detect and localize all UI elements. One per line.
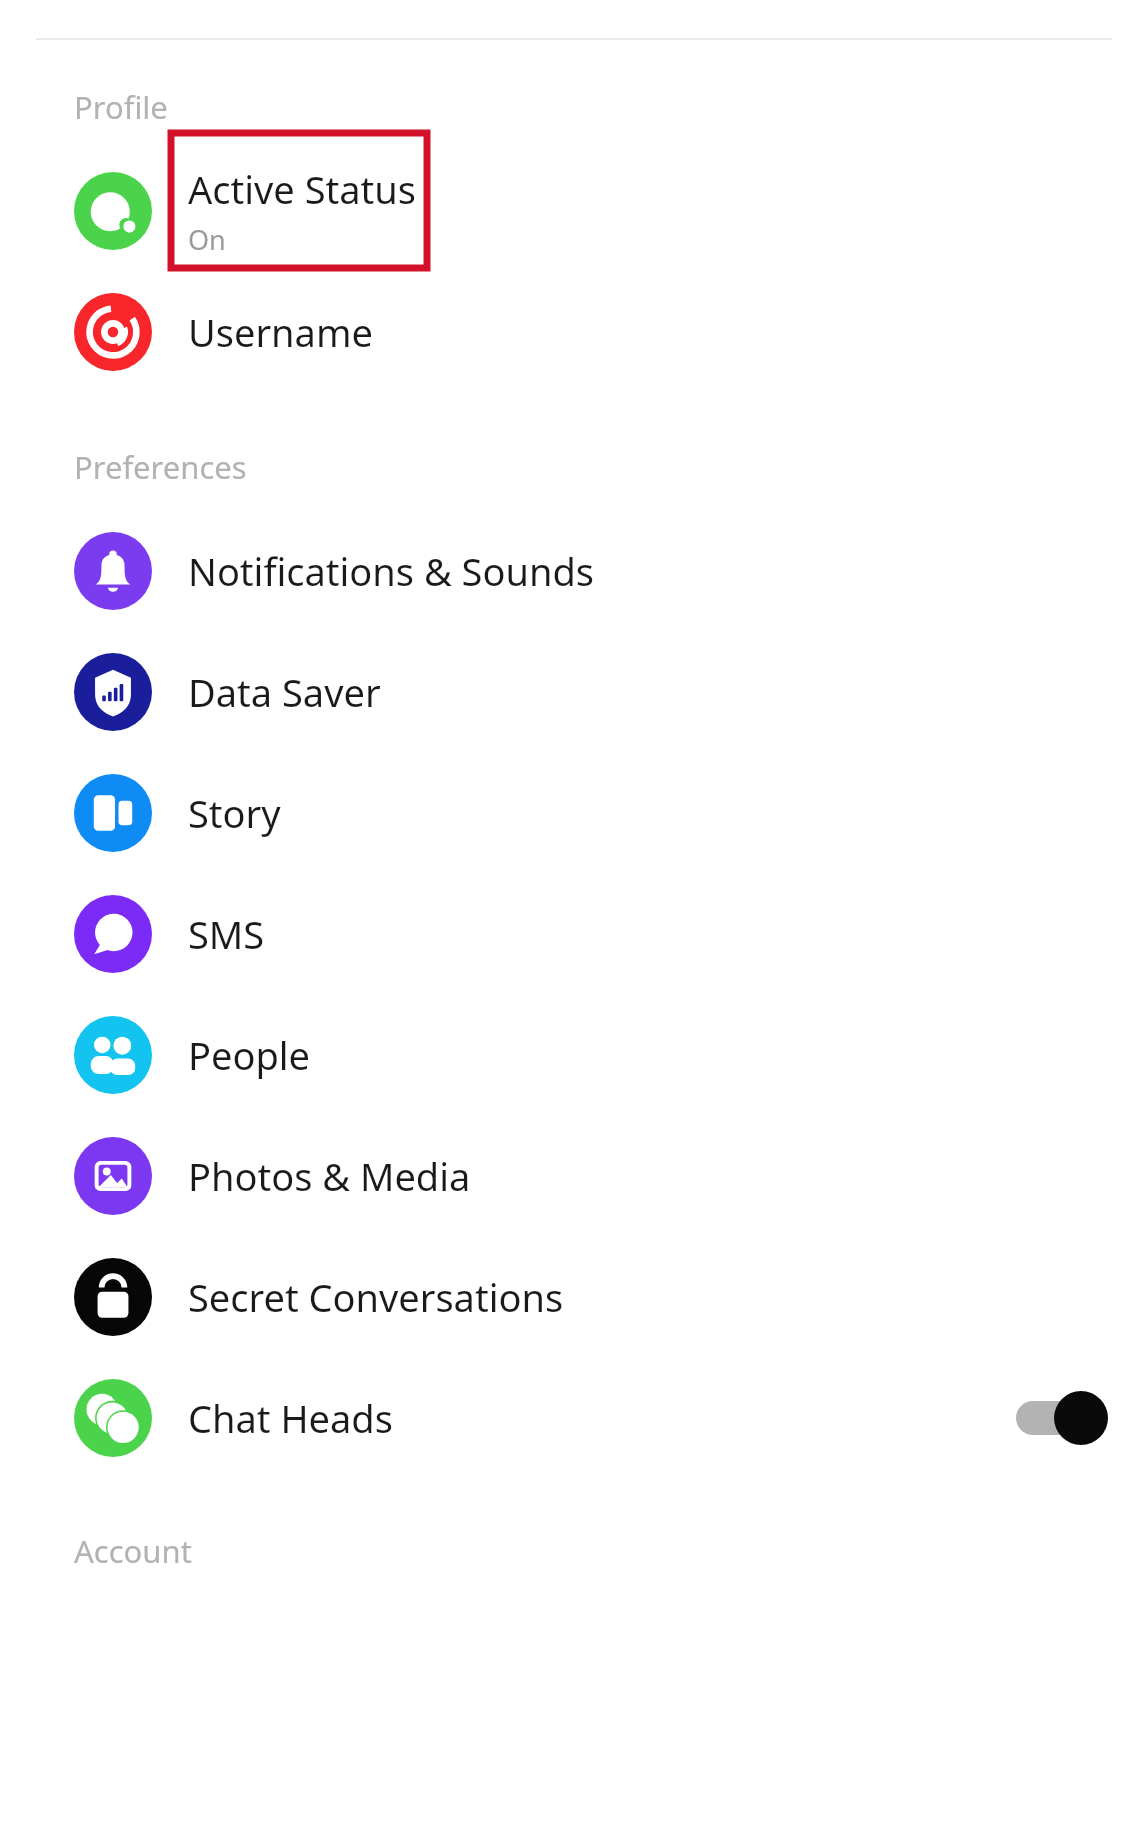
- button[interactable]: Story: [0, 752, 1148, 873]
- button[interactable]: Chat Heads toggle: [1016, 1390, 1108, 1446]
- button[interactable]: Active Status: [0, 150, 1148, 271]
- button[interactable]: Notifications & Sounds: [0, 510, 1148, 631]
- staticText: SMS: [188, 908, 265, 960]
- button[interactable]: Secret Conversations: [0, 1236, 1148, 1357]
- button[interactable]: Data Saver: [0, 631, 1148, 752]
- staticText: Chat Heads: [188, 1392, 393, 1444]
- staticText: Photos & Media: [188, 1150, 471, 1202]
- staticText: Story: [188, 787, 281, 839]
- staticText: Account: [74, 1530, 192, 1572]
- staticText: On: [188, 221, 226, 258]
- staticText: Secret Conversations: [188, 1271, 564, 1323]
- staticText: Notifications & Sounds: [188, 545, 594, 597]
- button[interactable]: Username: [0, 271, 1148, 392]
- staticText: Data Saver: [188, 666, 381, 718]
- staticText: Username: [188, 306, 373, 358]
- staticText: Active Status: [188, 163, 416, 215]
- staticText: Profile: [74, 86, 168, 128]
- button[interactable]: SMS: [0, 873, 1148, 994]
- staticText: People: [188, 1029, 311, 1081]
- button[interactable]: Photos & Media: [0, 1115, 1148, 1236]
- button[interactable]: Chat Heads: [0, 1357, 1148, 1478]
- staticText: Preferences: [74, 446, 247, 488]
- button[interactable]: People: [0, 994, 1148, 1115]
